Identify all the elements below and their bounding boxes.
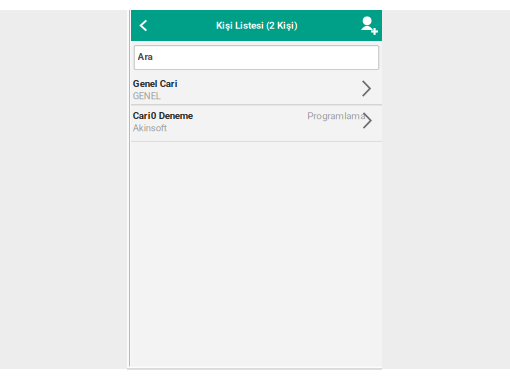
button[interactable]: Ara bbox=[134, 46, 379, 70]
button[interactable]: Cari0 Deneme bbox=[131, 105, 382, 141]
staticText: Kişi Listesi (2 Kişi) bbox=[216, 20, 297, 31]
button[interactable]: Add contact bbox=[357, 10, 379, 41]
staticText: Ara bbox=[138, 51, 153, 62]
staticText: GENEL bbox=[133, 90, 161, 102]
staticText: Cari0 Deneme bbox=[133, 110, 193, 121]
button[interactable]: Back bbox=[132, 10, 154, 41]
staticText: Akinsoft bbox=[133, 122, 167, 134]
button[interactable]: Genel Cari bbox=[131, 70, 382, 104]
staticText: Programlama bbox=[307, 110, 365, 121]
staticText: Genel Cari bbox=[133, 78, 178, 89]
